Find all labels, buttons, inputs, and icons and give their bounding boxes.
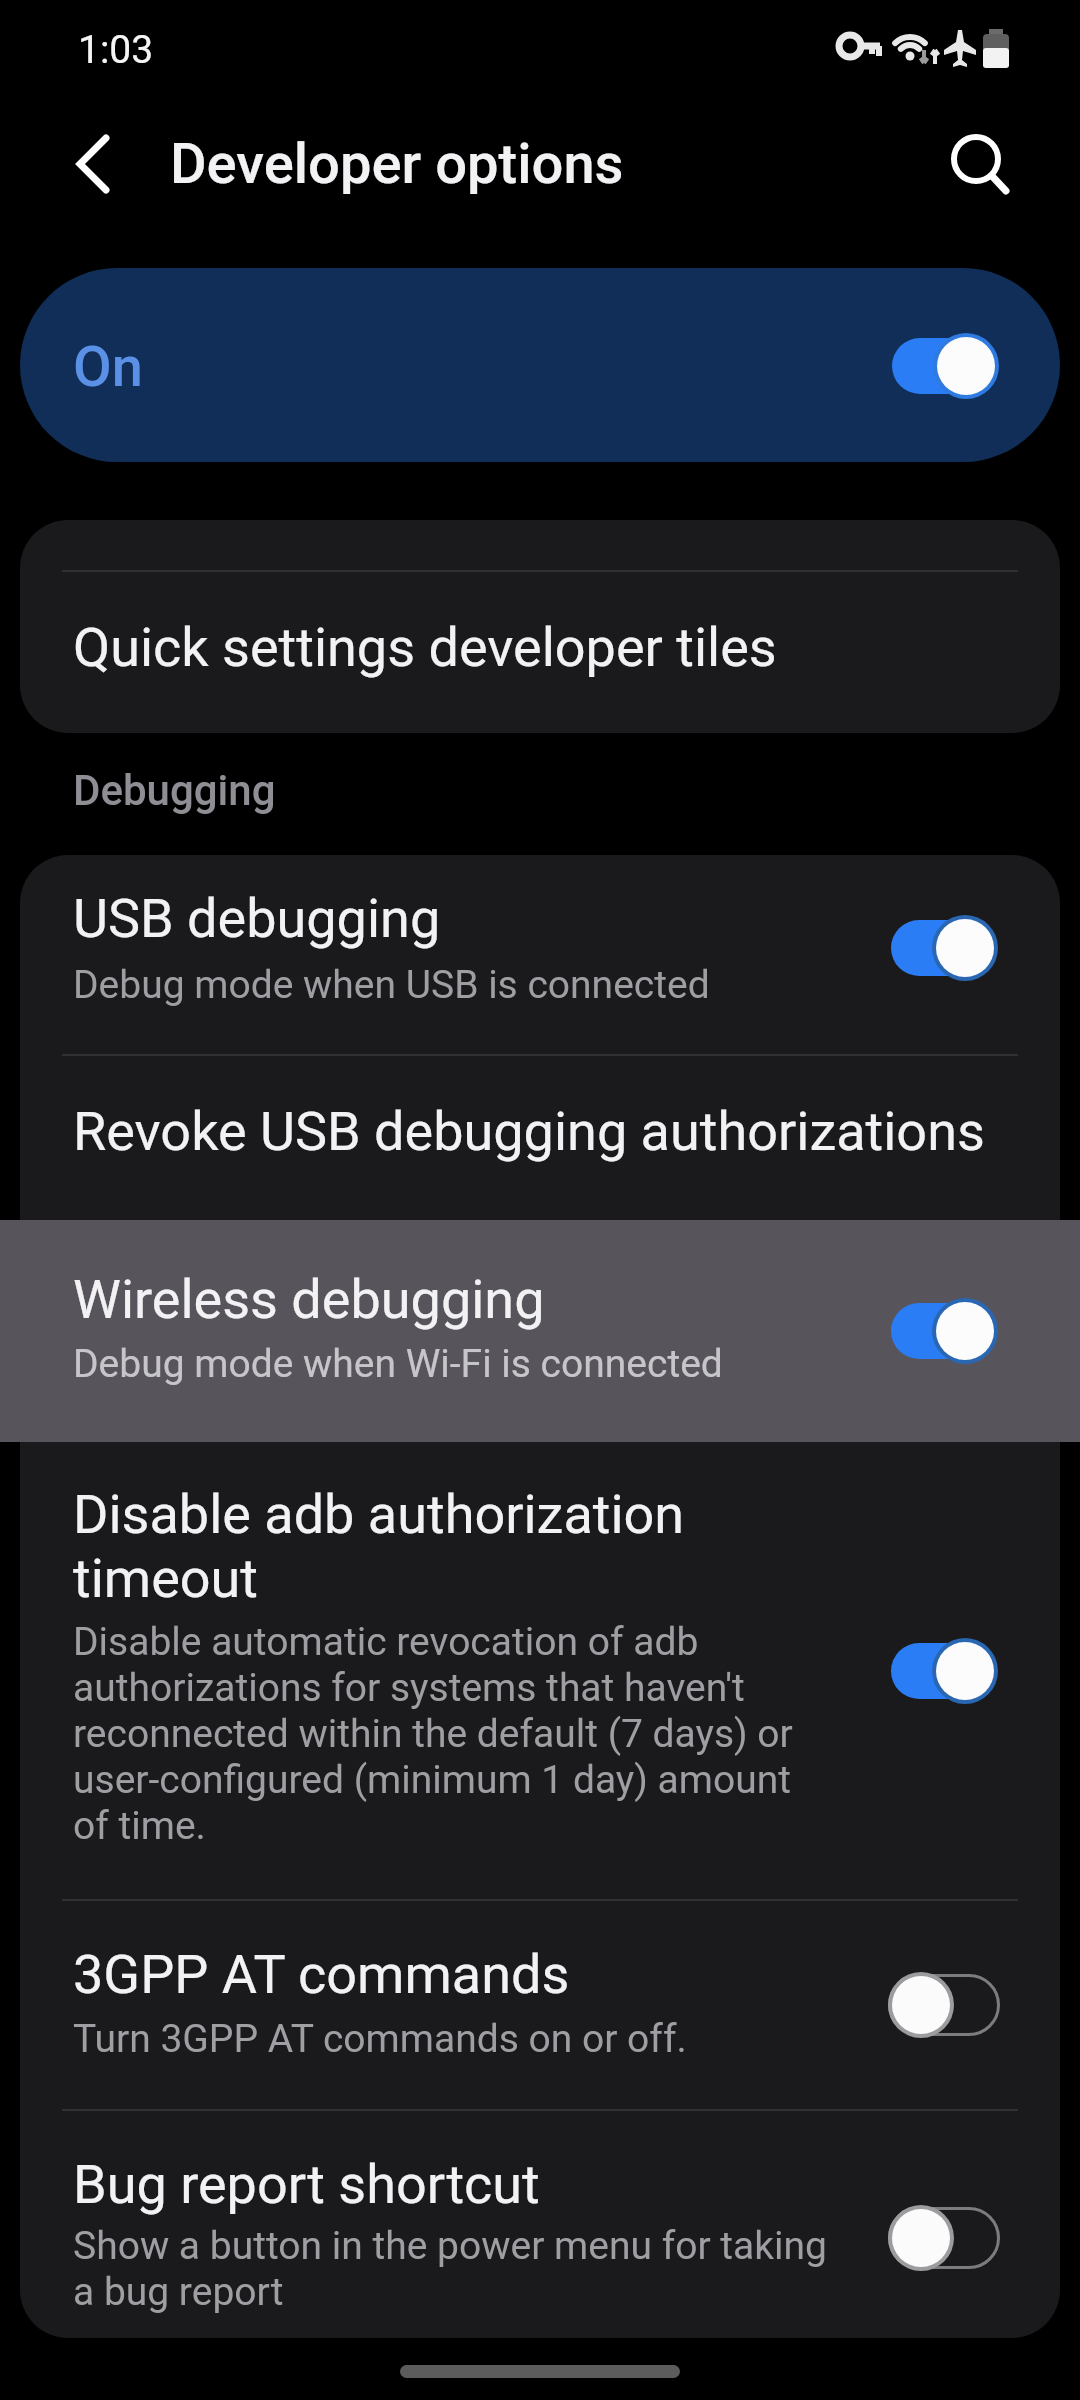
button[interactable] [20, 268, 1060, 462]
button[interactable] [946, 130, 1016, 200]
button[interactable] [20, 2111, 1060, 2338]
staticText: On [73, 334, 143, 400]
staticText: Developer options [170, 131, 624, 197]
staticText: Wireless debugging [73, 1268, 545, 1331]
button[interactable] [891, 1643, 997, 1699]
button[interactable] [20, 1056, 1060, 1220]
button[interactable] [48, 132, 120, 196]
button[interactable] [891, 920, 997, 976]
staticText: timeout [73, 1547, 259, 1610]
staticText: Debug mode when USB is connected [73, 962, 710, 1008]
button[interactable] [891, 1303, 997, 1359]
button[interactable] [20, 520, 1060, 733]
button[interactable] [20, 1901, 1060, 2109]
button[interactable] [888, 1974, 1000, 2036]
staticText: Debugging [73, 766, 276, 815]
staticText: Revoke USB debugging authorizations [73, 1100, 985, 1163]
button[interactable] [20, 1442, 1060, 1897]
staticText: Debug mode when Wi-Fi is connected [73, 1341, 723, 1387]
staticText: Disable automatic revocation of adb auth… [73, 1619, 793, 1849]
button[interactable] [892, 338, 998, 394]
staticText: 3GPP AT commands [73, 1943, 570, 2006]
staticText: Show a button in the power menu for taki… [73, 2223, 827, 2315]
staticText: Disable adb authorization [73, 1483, 685, 1546]
staticText: Turn 3GPP AT commands on or off. [73, 2016, 687, 2062]
staticText: USB debugging [73, 887, 441, 950]
button[interactable] [20, 862, 1060, 1052]
button[interactable] [0, 1220, 1080, 1442]
button[interactable] [888, 2207, 1000, 2269]
staticText: Quick settings developer tiles [73, 616, 777, 679]
staticText: 1:03 [78, 27, 154, 73]
staticText: Bug report shortcut [73, 2153, 540, 2216]
